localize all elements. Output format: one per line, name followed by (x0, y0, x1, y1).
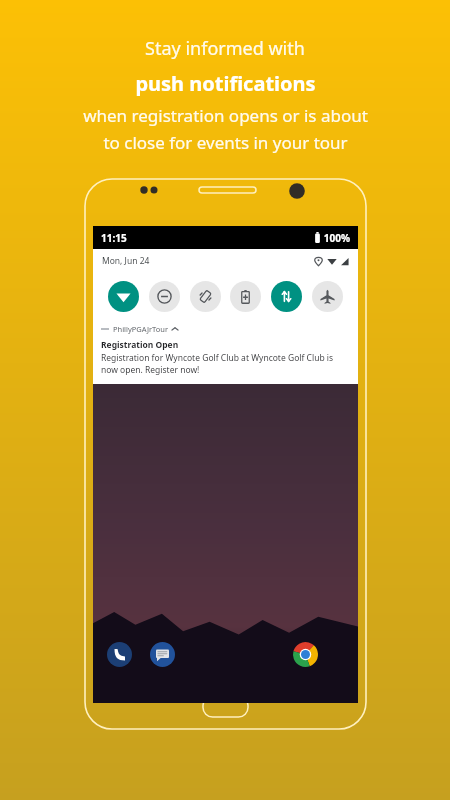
button[interactable]: Chrome (293, 642, 318, 667)
button[interactable]: Airplane mode (312, 281, 343, 312)
button[interactable]: Battery saver (230, 281, 261, 312)
button[interactable]: Auto rotate (190, 281, 221, 312)
staticText: 11:15 (101, 231, 127, 245)
staticText: to close for events in your tour (103, 131, 348, 154)
button[interactable]: Messages (150, 642, 175, 667)
button[interactable]: PhillyPGAJrTour (93, 319, 358, 384)
staticText: PhillyPGAJrTour (113, 324, 169, 334)
staticText: push notifications (135, 70, 316, 97)
staticText: when registration opens or is about (83, 104, 368, 127)
button[interactable]: Mobile data (271, 281, 302, 312)
button[interactable]: Phone (107, 642, 132, 667)
staticText: Mon, Jun 24 (102, 255, 150, 267)
staticText: 100% (323, 231, 350, 245)
staticText: Registration Open (101, 339, 179, 351)
button[interactable]: Wi-Fi (108, 281, 139, 312)
staticText: Registration for Wyncote Golf Club at Wy… (101, 352, 350, 376)
staticText: Stay informed with (145, 36, 305, 61)
button[interactable]: Do not disturb (149, 281, 180, 312)
